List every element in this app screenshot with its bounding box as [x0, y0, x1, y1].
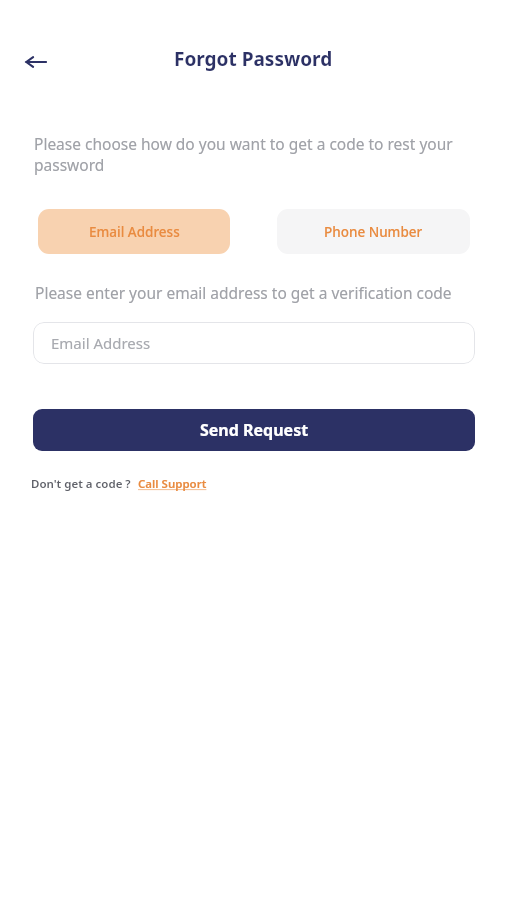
button[interactable]: Call Support	[138, 476, 207, 492]
button[interactable]: Email Address	[38, 209, 230, 254]
staticText: Please choose how do you want to get a c…	[34, 133, 475, 176]
staticText: Email Address	[89, 223, 180, 241]
staticText: Email Address	[51, 333, 151, 353]
button[interactable]: Phone Number	[277, 209, 470, 254]
staticText: Call Support	[138, 476, 207, 492]
button[interactable]: Email Address	[33, 322, 475, 364]
button[interactable]: Back	[14, 40, 58, 84]
staticText: Don't get a code ?	[31, 476, 131, 492]
staticText: Send Request	[200, 419, 309, 441]
staticText: Please enter your email address to get a…	[35, 282, 452, 303]
staticText: Forgot Password	[174, 46, 333, 72]
button[interactable]: Send Request	[33, 409, 475, 451]
staticText: Phone Number	[324, 223, 423, 241]
